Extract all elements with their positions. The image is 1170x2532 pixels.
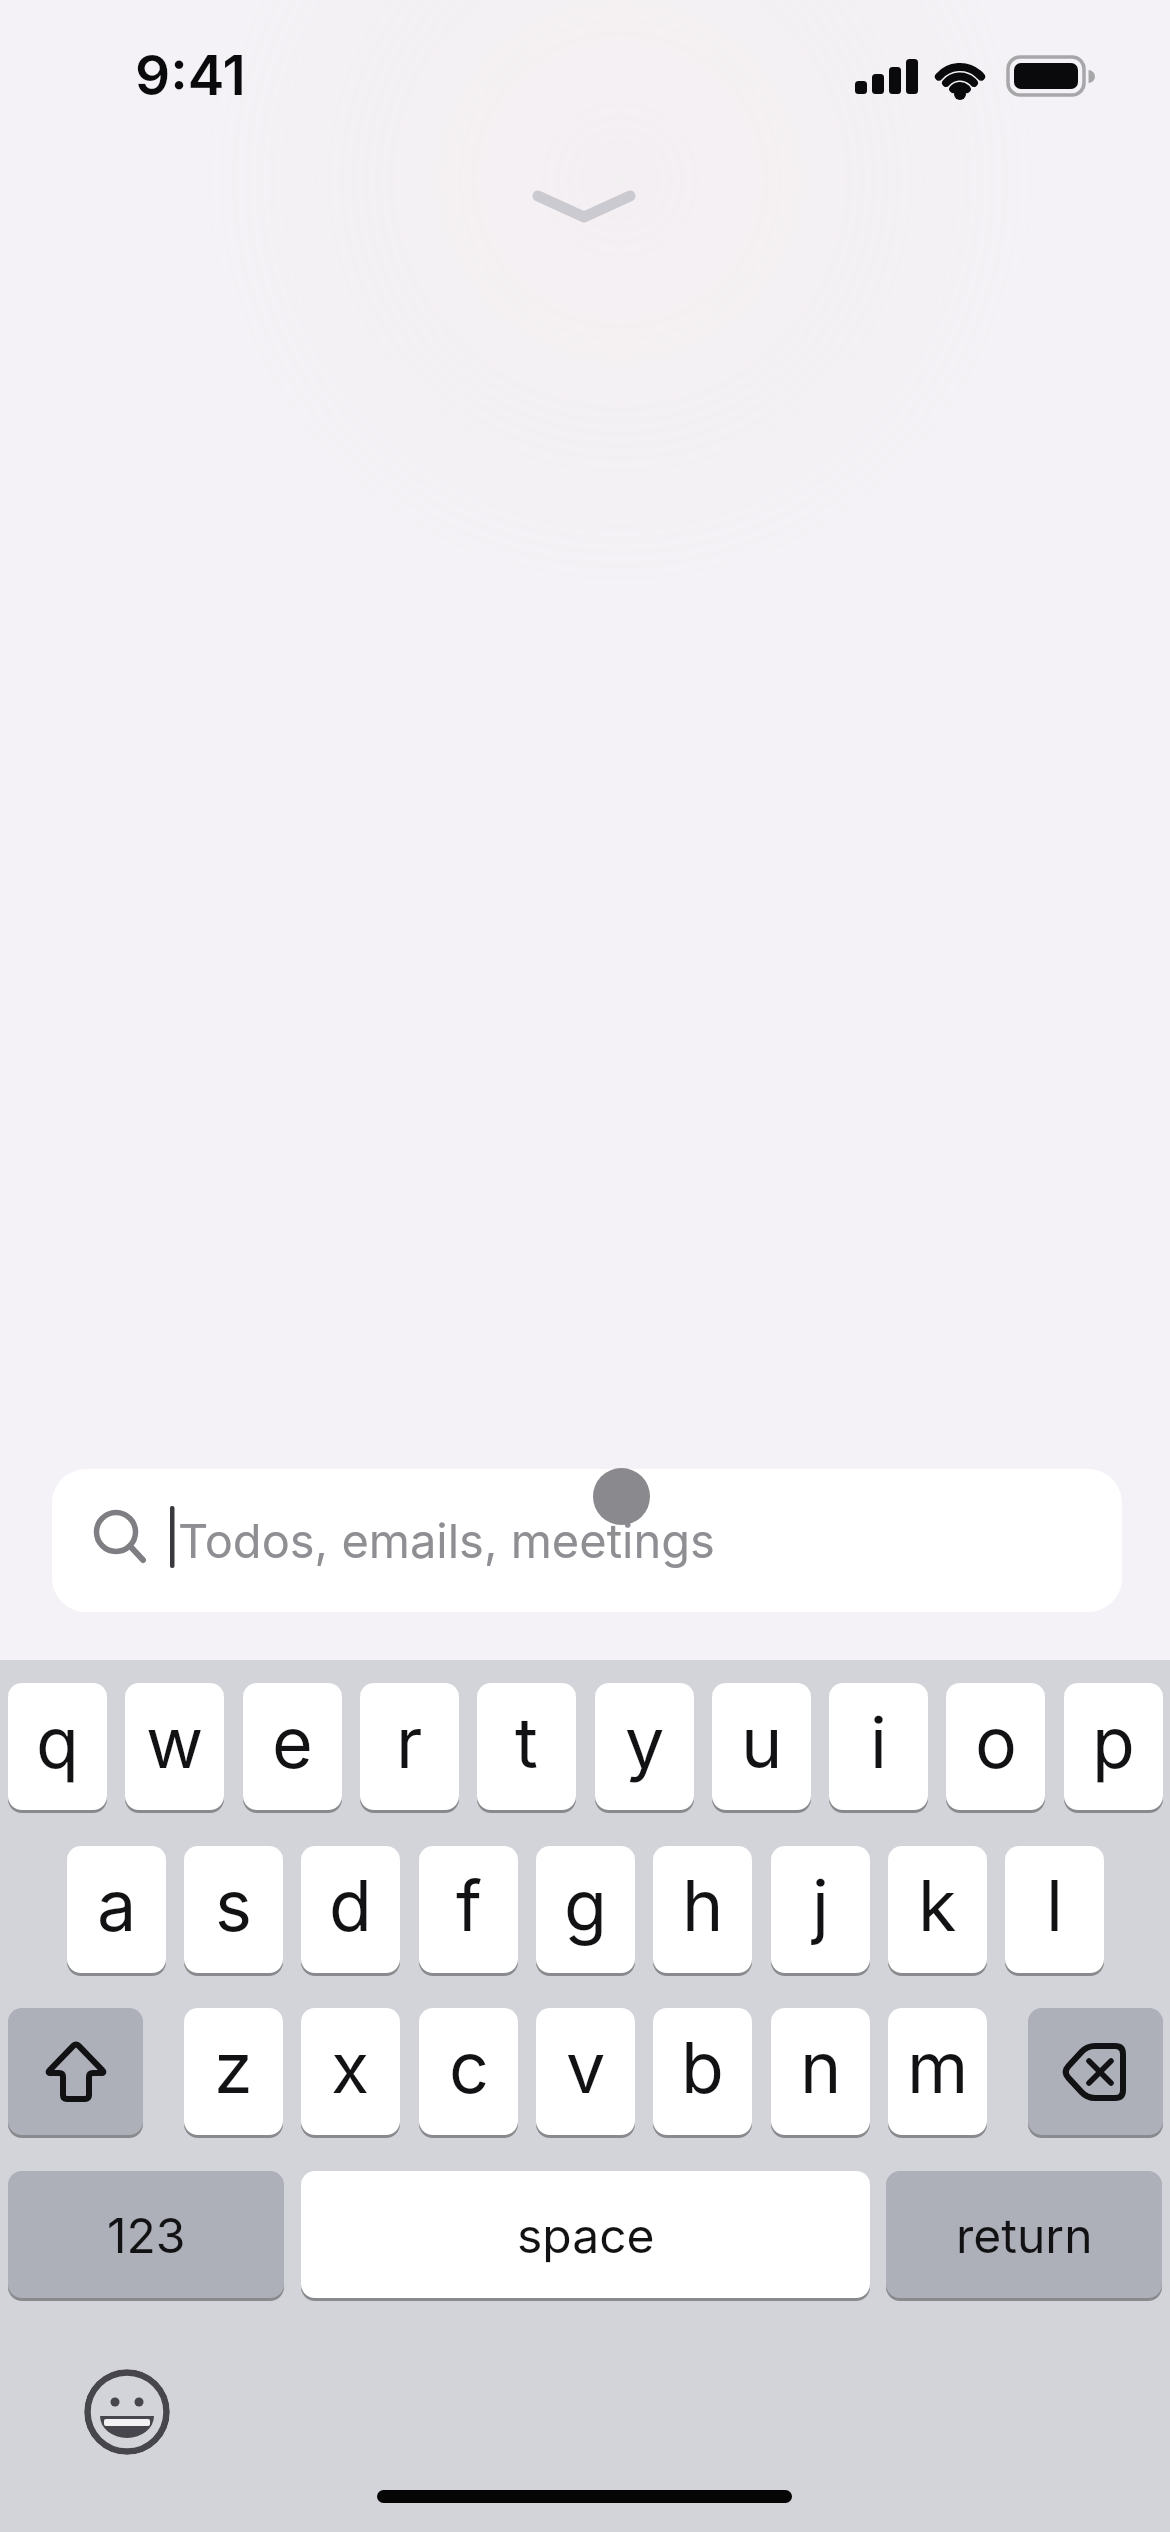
staticText: h (682, 1863, 724, 1948)
staticText: y (625, 1700, 665, 1785)
staticText: 9:41 (135, 42, 246, 102)
staticText: w (146, 1700, 204, 1785)
staticText: f (456, 1863, 482, 1948)
button[interactable]: h (653, 1846, 752, 1973)
staticText: t (515, 1700, 538, 1785)
staticText: l (1046, 1863, 1063, 1948)
staticText: e (272, 1700, 313, 1785)
button[interactable]: Todos, emails, meetings (52, 1469, 1122, 1612)
staticText: 123 (107, 2206, 186, 2264)
button[interactable]: x (301, 2008, 400, 2135)
button[interactable]: a (67, 1846, 166, 1973)
staticText: m (907, 2025, 969, 2110)
staticText: p (1092, 1700, 1135, 1785)
button[interactable]: l (1005, 1846, 1104, 1973)
staticText: u (741, 1700, 783, 1785)
button[interactable]: c (419, 2008, 518, 2135)
button[interactable]: w (125, 1683, 224, 1810)
staticText: c (449, 2025, 489, 2110)
button[interactable]: p (1064, 1683, 1163, 1810)
button[interactable]: e (243, 1683, 342, 1810)
staticText: Todos, emails, meetings (178, 1512, 715, 1569)
staticText: v (566, 2025, 606, 2110)
staticText: o (975, 1700, 1017, 1785)
staticText: x (331, 2025, 370, 2110)
staticText: d (329, 1863, 372, 1948)
button[interactable]: f (419, 1846, 518, 1973)
staticText: r (396, 1700, 423, 1785)
button[interactable]: y (595, 1683, 694, 1810)
button[interactable]: o (946, 1683, 1045, 1810)
staticText: z (214, 2025, 253, 2110)
button[interactable]: d (301, 1846, 400, 1973)
staticText: g (564, 1863, 607, 1948)
button[interactable]: space (301, 2171, 870, 2298)
staticText: return (956, 2206, 1093, 2264)
button[interactable]: v (536, 2008, 635, 2135)
button[interactable]: j (771, 1846, 870, 1973)
button[interactable]: t (477, 1683, 576, 1810)
button[interactable]: b (653, 2008, 752, 2135)
button[interactable]: 123 (8, 2171, 284, 2298)
button[interactable]: k (888, 1846, 987, 1973)
staticText: s (215, 1863, 252, 1948)
button[interactable] (1028, 2008, 1163, 2135)
button[interactable]: s (184, 1846, 283, 1973)
button[interactable] (8, 2008, 143, 2135)
staticText: q (36, 1700, 79, 1785)
staticText: a (97, 1863, 137, 1948)
button[interactable]: g (536, 1846, 635, 1973)
staticText: n (800, 2025, 842, 2110)
staticText: j (812, 1863, 829, 1948)
staticText: i (870, 1700, 887, 1785)
button[interactable]: n (771, 2008, 870, 2135)
button[interactable]: q (8, 1683, 107, 1810)
staticText: space (517, 2206, 655, 2264)
staticText: b (681, 2025, 724, 2110)
button[interactable]: return (886, 2171, 1162, 2298)
button[interactable]: r (360, 1683, 459, 1810)
button[interactable]: m (888, 2008, 987, 2135)
button[interactable]: z (184, 2008, 283, 2135)
button[interactable] (84, 2369, 170, 2455)
button[interactable]: i (829, 1683, 928, 1810)
button[interactable]: u (712, 1683, 811, 1810)
staticText: k (918, 1863, 957, 1948)
